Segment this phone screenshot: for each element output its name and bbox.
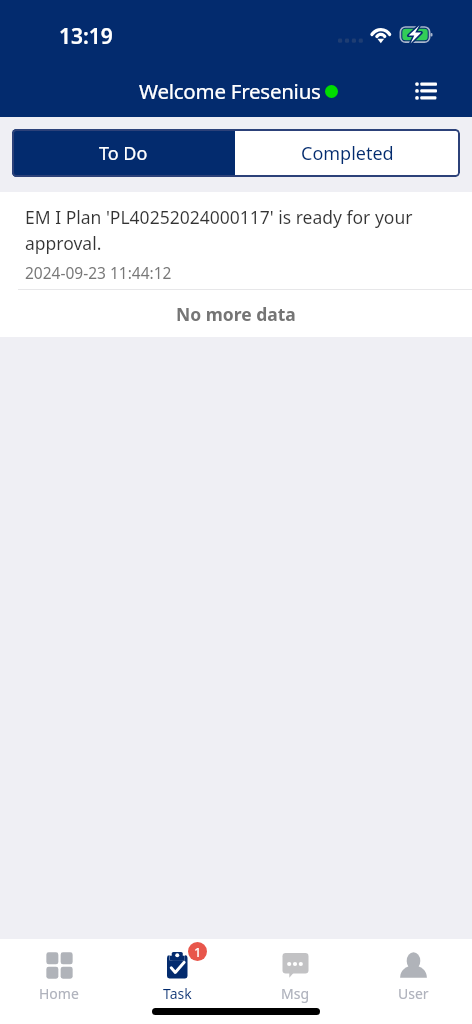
staticText: 1: [194, 943, 202, 961]
staticText: Completed: [301, 141, 394, 166]
staticText: User: [398, 984, 429, 1003]
staticText: No more data: [176, 302, 296, 326]
button[interactable]: User: [354, 939, 472, 1007]
staticText: Welcome Fresenius: [139, 77, 321, 105]
staticText: Msg: [281, 984, 310, 1003]
button[interactable]: EM I Plan 'PL40252024000117' is ready fo…: [0, 192, 472, 290]
staticText: 2024-09-23 11:44:12: [25, 262, 172, 283]
staticText: 13:19: [59, 22, 113, 51]
button[interactable]: Completed: [235, 129, 460, 177]
button[interactable]: Home: [0, 939, 118, 1007]
staticText: To Do: [99, 141, 148, 166]
button[interactable]: 1: [118, 939, 236, 1007]
button[interactable]: Menu: [402, 67, 450, 115]
staticText: Task: [163, 984, 192, 1003]
staticText: Home: [39, 984, 79, 1003]
button[interactable]: Msg: [236, 939, 354, 1007]
staticText: EM I Plan 'PL40252024000117' is ready fo…: [25, 205, 442, 255]
button[interactable]: To Do: [12, 129, 235, 177]
